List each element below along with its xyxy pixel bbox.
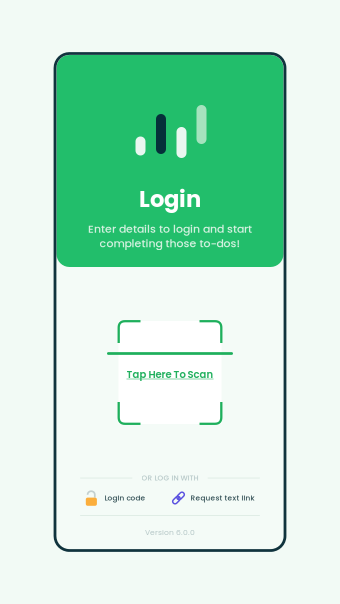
button[interactable]: Login code: [85, 488, 145, 508]
staticText: Enter details to login and start: [88, 221, 252, 237]
staticText: Login code: [104, 493, 145, 503]
button[interactable]: Tap Here To Scan: [118, 363, 221, 385]
staticText: Request text link: [190, 493, 254, 503]
staticText: Version 6.0.0: [145, 527, 195, 538]
button[interactable]: Request text link: [172, 488, 254, 508]
staticText: completing those to-dos!: [99, 236, 240, 251]
staticText: OR LOG IN WITH: [141, 473, 198, 483]
staticText: Tap Here To Scan: [126, 367, 213, 381]
staticText: Login: [139, 183, 201, 215]
